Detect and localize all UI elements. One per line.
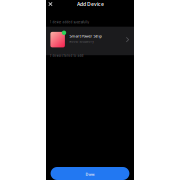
staticText: Added successfully [69, 40, 93, 43]
staticText: Add Device [77, 1, 104, 7]
staticText: 1 device added successfully [49, 20, 88, 24]
button[interactable]: Close [47, 0, 54, 8]
staticText: 0 devices failed to add [49, 54, 83, 58]
button[interactable]: Smart Power Strip [46, 27, 134, 55]
staticText: Smart Power Strip [69, 33, 101, 39]
button[interactable]: Done [51, 167, 129, 180]
staticText: Done [85, 172, 94, 177]
